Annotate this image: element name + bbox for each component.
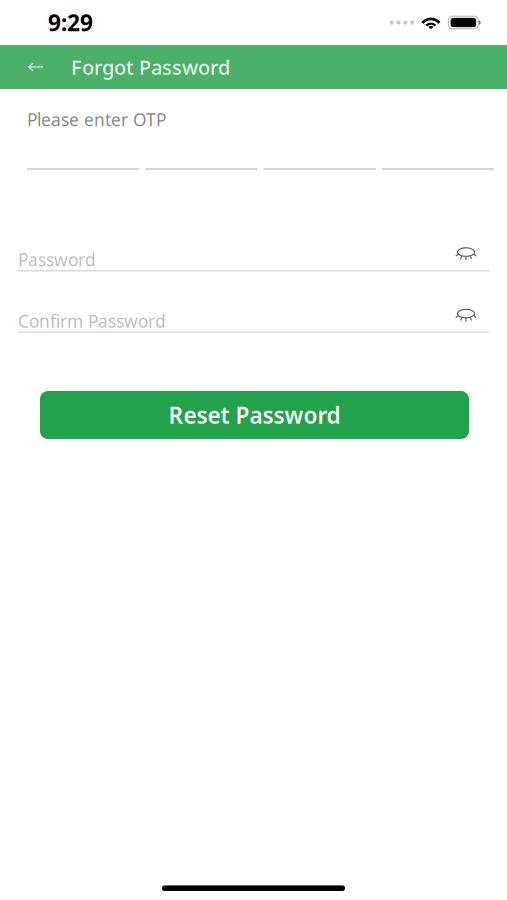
button[interactable]: Back bbox=[14, 45, 58, 89]
button[interactable]: Password bbox=[18, 249, 455, 270]
staticText: Forgot Password bbox=[71, 54, 230, 80]
button[interactable]: Show password bbox=[455, 245, 489, 274]
staticText: Please enter OTP bbox=[27, 108, 166, 131]
staticText: Confirm Password bbox=[18, 309, 166, 332]
button[interactable]: Confirm Password bbox=[18, 310, 455, 331]
staticText: Password bbox=[18, 248, 96, 271]
button[interactable]: Reset Password bbox=[40, 391, 469, 439]
staticText: 9:29 bbox=[48, 7, 93, 37]
staticText: Reset Password bbox=[168, 400, 340, 430]
button[interactable]: OTP digit 3 bbox=[263, 140, 376, 170]
button[interactable]: OTP digit 2 bbox=[145, 140, 257, 170]
button[interactable]: OTP digit 1 bbox=[27, 140, 139, 170]
button[interactable]: Show confirm password bbox=[455, 306, 489, 335]
button[interactable]: OTP digit 4 bbox=[382, 140, 494, 170]
